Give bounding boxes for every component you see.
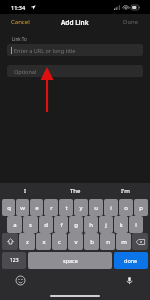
button[interactable]: Emoji [16, 276, 25, 285]
button[interactable]: h [84, 216, 98, 233]
button[interactable]: j [99, 216, 113, 233]
staticText: w [20, 204, 25, 212]
staticText: a [13, 221, 17, 229]
staticText: The [70, 187, 81, 195]
staticText: p [139, 204, 143, 212]
button[interactable]: p [134, 199, 148, 216]
staticText: d [44, 221, 48, 229]
button[interactable]: v [68, 233, 83, 250]
button[interactable]: I'm [100, 183, 150, 199]
staticText: done [124, 257, 138, 264]
staticText: t [65, 204, 68, 212]
button[interactable]: l [129, 216, 143, 233]
staticText: Done [123, 18, 139, 26]
staticText: Enter a URL or long title [14, 47, 76, 54]
staticText: Add Link [61, 18, 89, 27]
button[interactable]: q [2, 199, 15, 216]
button[interactable]: I [0, 183, 50, 199]
button[interactable]: 123 [2, 252, 26, 269]
staticText: Link To [12, 36, 27, 42]
button[interactable]: x [36, 233, 51, 250]
button[interactable]: w [16, 199, 29, 216]
button[interactable]: done [114, 252, 148, 269]
staticText: s [29, 221, 32, 229]
button[interactable]: b [84, 233, 99, 250]
button[interactable]: z [19, 233, 35, 250]
staticText: j [105, 221, 107, 229]
button[interactable]: r [44, 199, 58, 216]
button[interactable]: k [114, 216, 128, 233]
button[interactable]: a [7, 216, 22, 233]
staticText: r [50, 204, 53, 212]
staticText: y [79, 204, 83, 212]
staticText: Cancel [11, 18, 30, 26]
staticText: m [121, 238, 127, 246]
button[interactable]: n [100, 233, 115, 250]
staticText: v [74, 238, 78, 246]
staticText: i [110, 204, 112, 212]
button[interactable]: Cancel [0, 15, 41, 29]
button[interactable]: d [39, 216, 53, 233]
button[interactable]: y [74, 199, 88, 216]
staticText: x [42, 238, 46, 246]
staticText: 11:34 [11, 4, 26, 11]
staticText: o [124, 204, 128, 212]
button[interactable]: The [50, 183, 100, 199]
staticText: g [74, 221, 78, 229]
staticText: f [60, 221, 63, 229]
button[interactable]: e [30, 199, 43, 216]
button[interactable]: Enter a URL or long title [7, 44, 143, 56]
button[interactable]: Done [112, 15, 150, 29]
staticText: n [106, 238, 110, 246]
staticText: k [119, 221, 123, 229]
staticText: I'm [121, 187, 130, 195]
staticText: c [58, 238, 61, 246]
button[interactable]: f [54, 216, 68, 233]
button[interactable]: g [69, 216, 83, 233]
button[interactable]: s [23, 216, 38, 233]
button[interactable]: Backspace [132, 233, 148, 250]
button[interactable]: c [52, 233, 67, 250]
button[interactable]: i [104, 199, 118, 216]
staticText: b [90, 238, 94, 246]
staticText: space [63, 257, 78, 264]
button[interactable]: space [28, 252, 112, 269]
staticText: 123 [10, 257, 19, 264]
button[interactable]: Dictation [125, 276, 134, 285]
button[interactable]: m [116, 233, 131, 250]
button[interactable]: Optional [7, 65, 143, 77]
button[interactable]: u [89, 199, 103, 216]
staticText: e [35, 204, 39, 212]
staticText: u [94, 204, 98, 212]
staticText: z [26, 238, 29, 246]
button[interactable]: Shift [2, 233, 18, 250]
staticText: l [135, 221, 137, 229]
button[interactable]: o [119, 199, 133, 216]
staticText: I [24, 187, 27, 195]
staticText: h [89, 221, 93, 229]
staticText: Optional [14, 68, 37, 75]
staticText: q [7, 204, 11, 212]
button[interactable]: t [59, 199, 73, 216]
